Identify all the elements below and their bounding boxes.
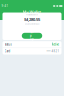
staticText: Status bbox=[4, 43, 11, 46]
staticText: Updated a moment ago bbox=[24, 23, 39, 25]
staticText: Available balance bbox=[26, 14, 38, 15]
staticText: 9:41 bbox=[2, 4, 9, 8]
staticText: Top up bbox=[30, 30, 34, 41]
staticText: •••• 4821 bbox=[46, 49, 59, 53]
button[interactable]: Top up bbox=[22, 33, 42, 39]
staticText: Card bbox=[4, 49, 10, 53]
staticText: Active bbox=[51, 43, 59, 46]
button[interactable]: Status bbox=[2, 41, 61, 48]
button[interactable]: Card bbox=[2, 48, 61, 55]
staticText: My Wallet bbox=[22, 9, 41, 15]
staticText: $4,280.55 bbox=[24, 17, 40, 22]
